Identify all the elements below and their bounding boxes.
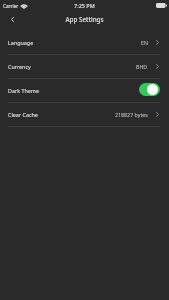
staticText: Currency xyxy=(8,63,31,70)
staticText: BHD xyxy=(136,63,148,70)
staticText: Clear Cache xyxy=(8,111,38,118)
button[interactable]: Dark Theme xyxy=(0,79,169,102)
staticText: App Settings xyxy=(65,15,104,24)
staticText: 218827 bytes xyxy=(115,111,148,118)
button[interactable]: Clear Cache xyxy=(0,103,169,126)
button[interactable]: Currency xyxy=(0,55,169,78)
staticText: Dark Theme xyxy=(8,87,39,94)
button[interactable]: Dark Theme toggle xyxy=(139,83,160,96)
staticText: 7:25 PM xyxy=(74,2,95,9)
button[interactable]: Back xyxy=(6,13,19,26)
staticText: Carrier xyxy=(3,3,19,9)
staticText: EN xyxy=(141,39,148,46)
staticText: Language xyxy=(8,39,34,46)
button[interactable]: Language xyxy=(0,31,169,54)
